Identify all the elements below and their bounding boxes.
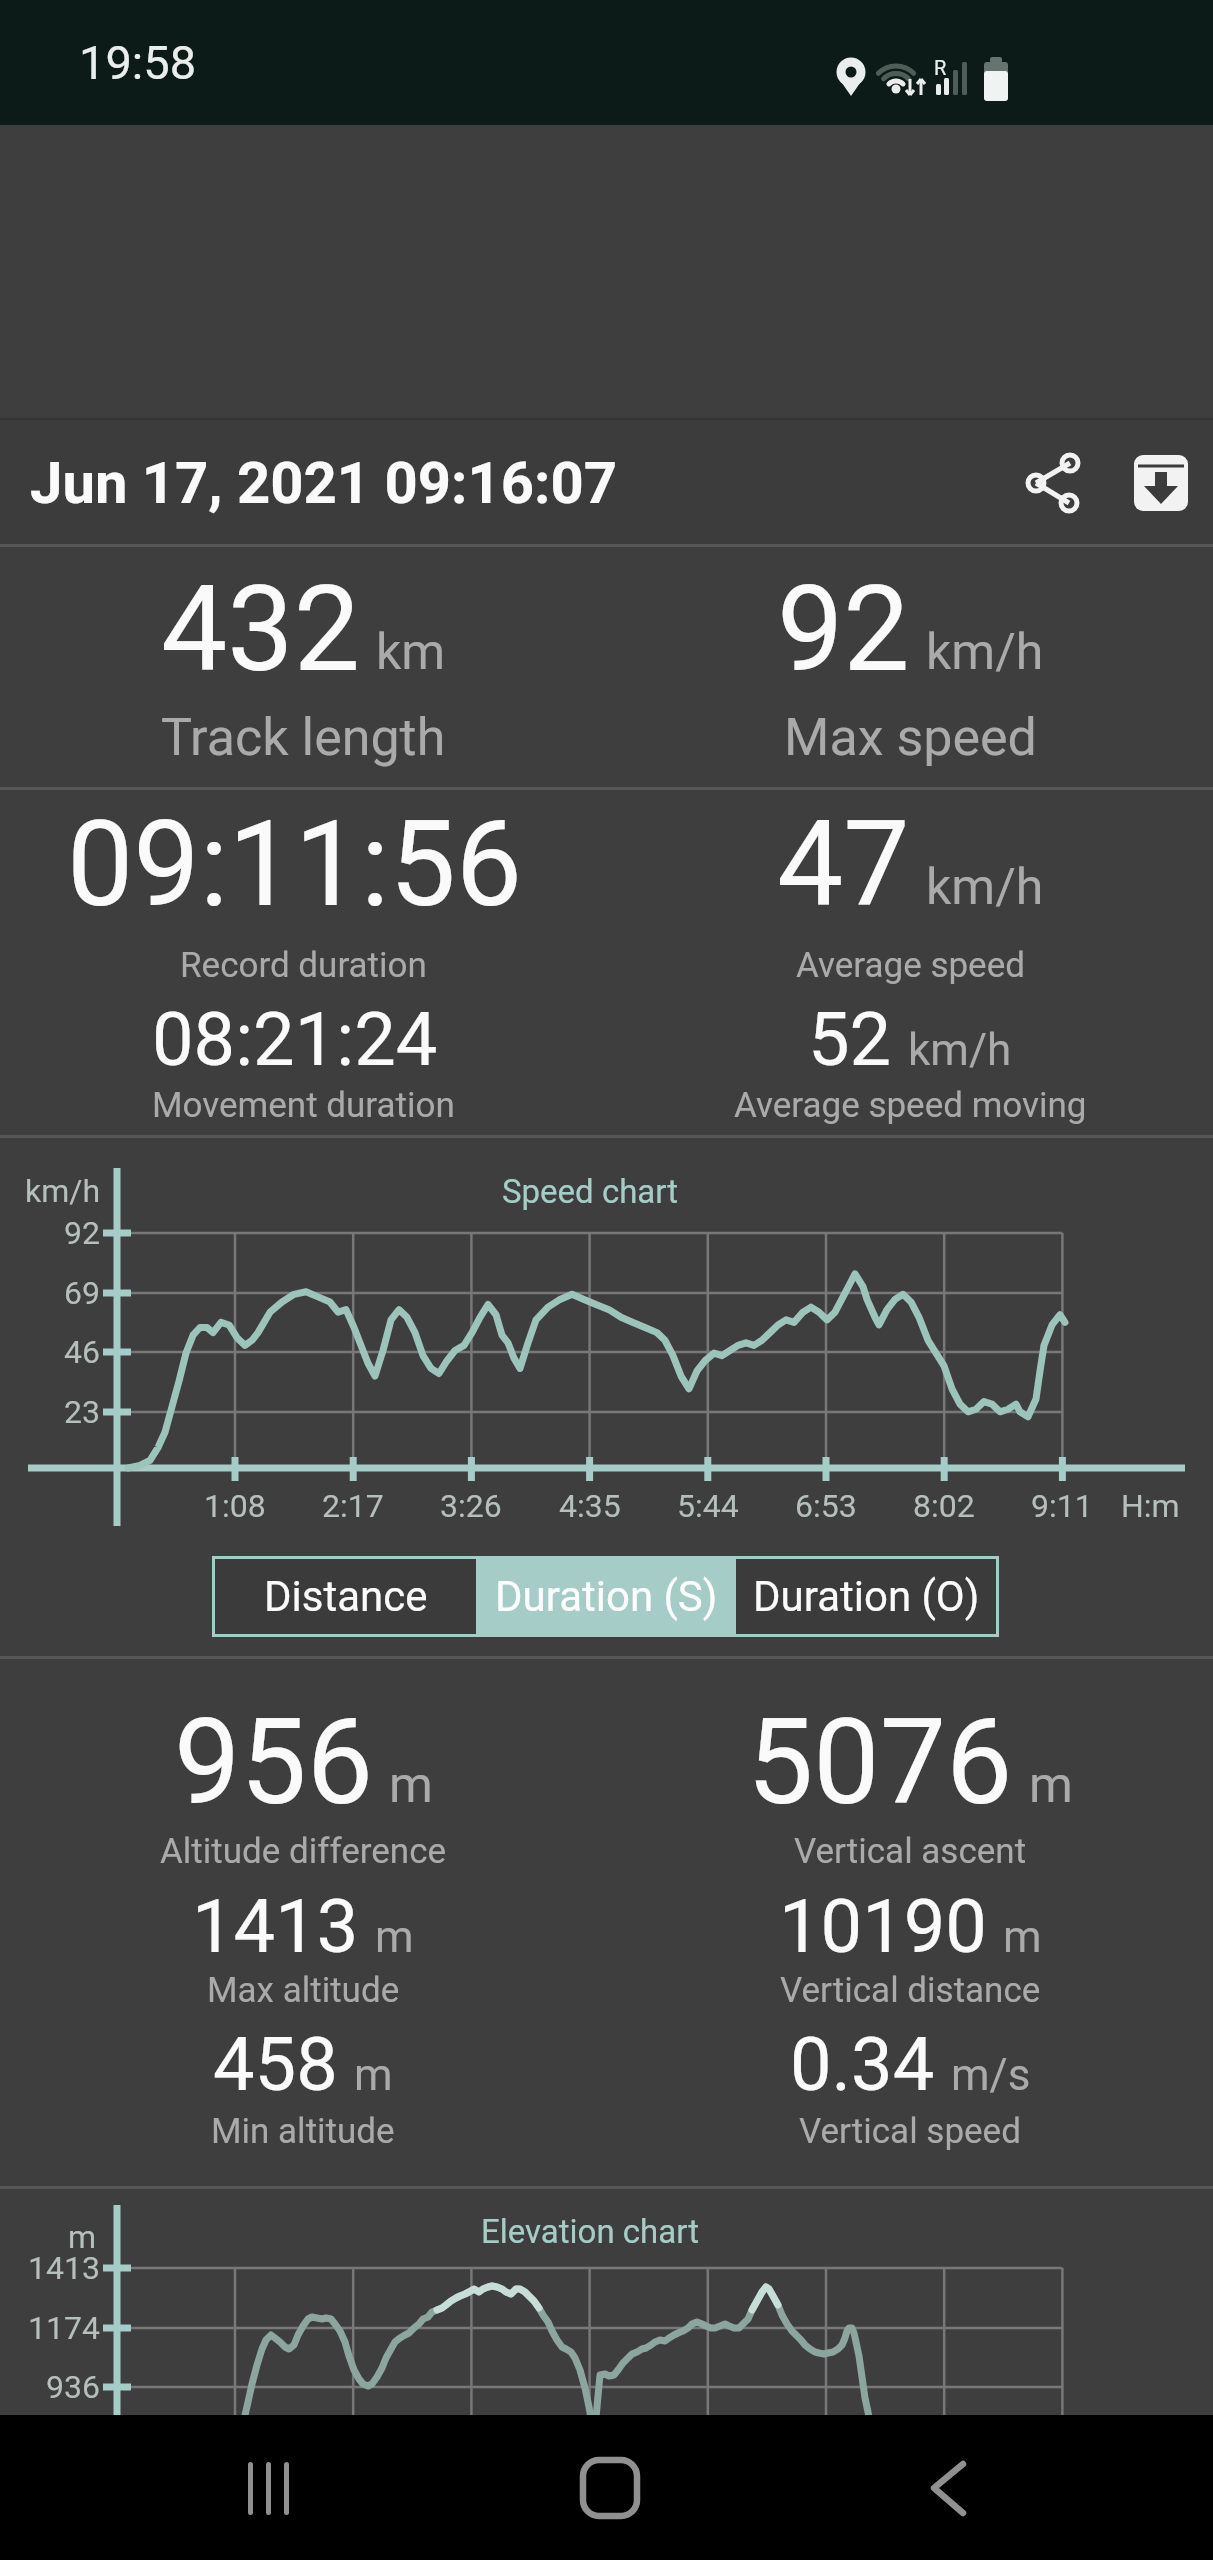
- staticText: m: [375, 1911, 414, 1963]
- staticText: Max altitude: [207, 1970, 400, 2011]
- staticText: 432: [161, 561, 360, 699]
- staticText: Average speed moving: [734, 1085, 1087, 1126]
- staticText: 08:21:24: [152, 996, 438, 1083]
- staticText: 3:26: [440, 1487, 502, 1525]
- staticText: Track length: [161, 707, 446, 768]
- staticText: Jun 17, 2021 09:16:07: [30, 449, 617, 517]
- staticText: Elevation chart: [481, 2212, 699, 2251]
- staticText: 52: [808, 996, 892, 1083]
- button[interactable]: [218, 2437, 318, 2537]
- button[interactable]: [1126, 448, 1196, 518]
- staticText: Max speed: [784, 707, 1037, 768]
- staticText: 2:17: [322, 1487, 384, 1525]
- staticText: 46: [64, 1333, 100, 1371]
- staticText: 09:11:56: [67, 796, 523, 934]
- staticText: Vertical speed: [799, 2111, 1021, 2152]
- button[interactable]: [1018, 448, 1088, 518]
- staticText: km/h: [25, 1172, 101, 1210]
- staticText: 1174: [28, 2309, 100, 2347]
- staticText: Duration (S): [495, 1572, 718, 1621]
- staticText: Altitude difference: [160, 1831, 447, 1872]
- staticText: 458: [213, 2021, 338, 2108]
- staticText: m: [389, 1756, 433, 1815]
- staticText: 8:02: [913, 1487, 975, 1525]
- staticText: Average speed: [796, 945, 1025, 986]
- staticText: m: [354, 2049, 393, 2101]
- staticText: Speed chart: [502, 1172, 679, 1211]
- staticText: 5076: [747, 1694, 1013, 1832]
- staticText: 92: [64, 1214, 100, 1252]
- staticText: 10190: [779, 1883, 987, 1970]
- staticText: Movement duration: [152, 1085, 455, 1126]
- staticText: Min altitude: [211, 2111, 395, 2152]
- staticText: 19:58: [79, 35, 197, 90]
- staticText: R: [934, 56, 947, 79]
- staticText: 5:44: [677, 1487, 739, 1525]
- staticText: km: [376, 623, 446, 682]
- staticText: Record duration: [180, 945, 427, 986]
- staticText: 1:08: [204, 1487, 266, 1525]
- staticText: Vertical distance: [780, 1970, 1041, 2011]
- button[interactable]: [560, 2437, 660, 2537]
- staticText: 936: [46, 2368, 100, 2406]
- staticText: Duration (O): [753, 1572, 980, 1621]
- button[interactable]: [900, 2437, 1000, 2537]
- staticText: m/s: [951, 2049, 1031, 2101]
- staticText: m: [68, 2218, 97, 2256]
- staticText: Vertical ascent: [794, 1831, 1027, 1872]
- staticText: m: [1029, 1756, 1073, 1815]
- staticText: 69: [64, 1274, 100, 1312]
- staticText: 9:11: [1031, 1487, 1093, 1525]
- staticText: 23: [64, 1393, 100, 1431]
- staticText: 4:35: [559, 1487, 621, 1525]
- staticText: 1413: [28, 2249, 100, 2287]
- button[interactable]: Duration (S): [476, 1559, 736, 1634]
- staticText: Distance: [264, 1572, 428, 1621]
- staticText: km/h: [926, 858, 1044, 917]
- button[interactable]: Duration (O): [736, 1559, 996, 1634]
- staticText: km/h: [908, 1024, 1012, 1076]
- staticText: m: [1003, 1911, 1042, 1963]
- staticText: km/h: [926, 623, 1044, 682]
- staticText: 47: [777, 796, 910, 934]
- staticText: 1413: [192, 1883, 359, 1970]
- staticText: H:m: [1121, 1487, 1180, 1525]
- staticText: 6:53: [795, 1487, 857, 1525]
- staticText: 0.34: [790, 2021, 935, 2108]
- button[interactable]: Distance: [215, 1559, 476, 1634]
- staticText: 956: [174, 1694, 373, 1832]
- staticText: 92: [777, 561, 910, 699]
